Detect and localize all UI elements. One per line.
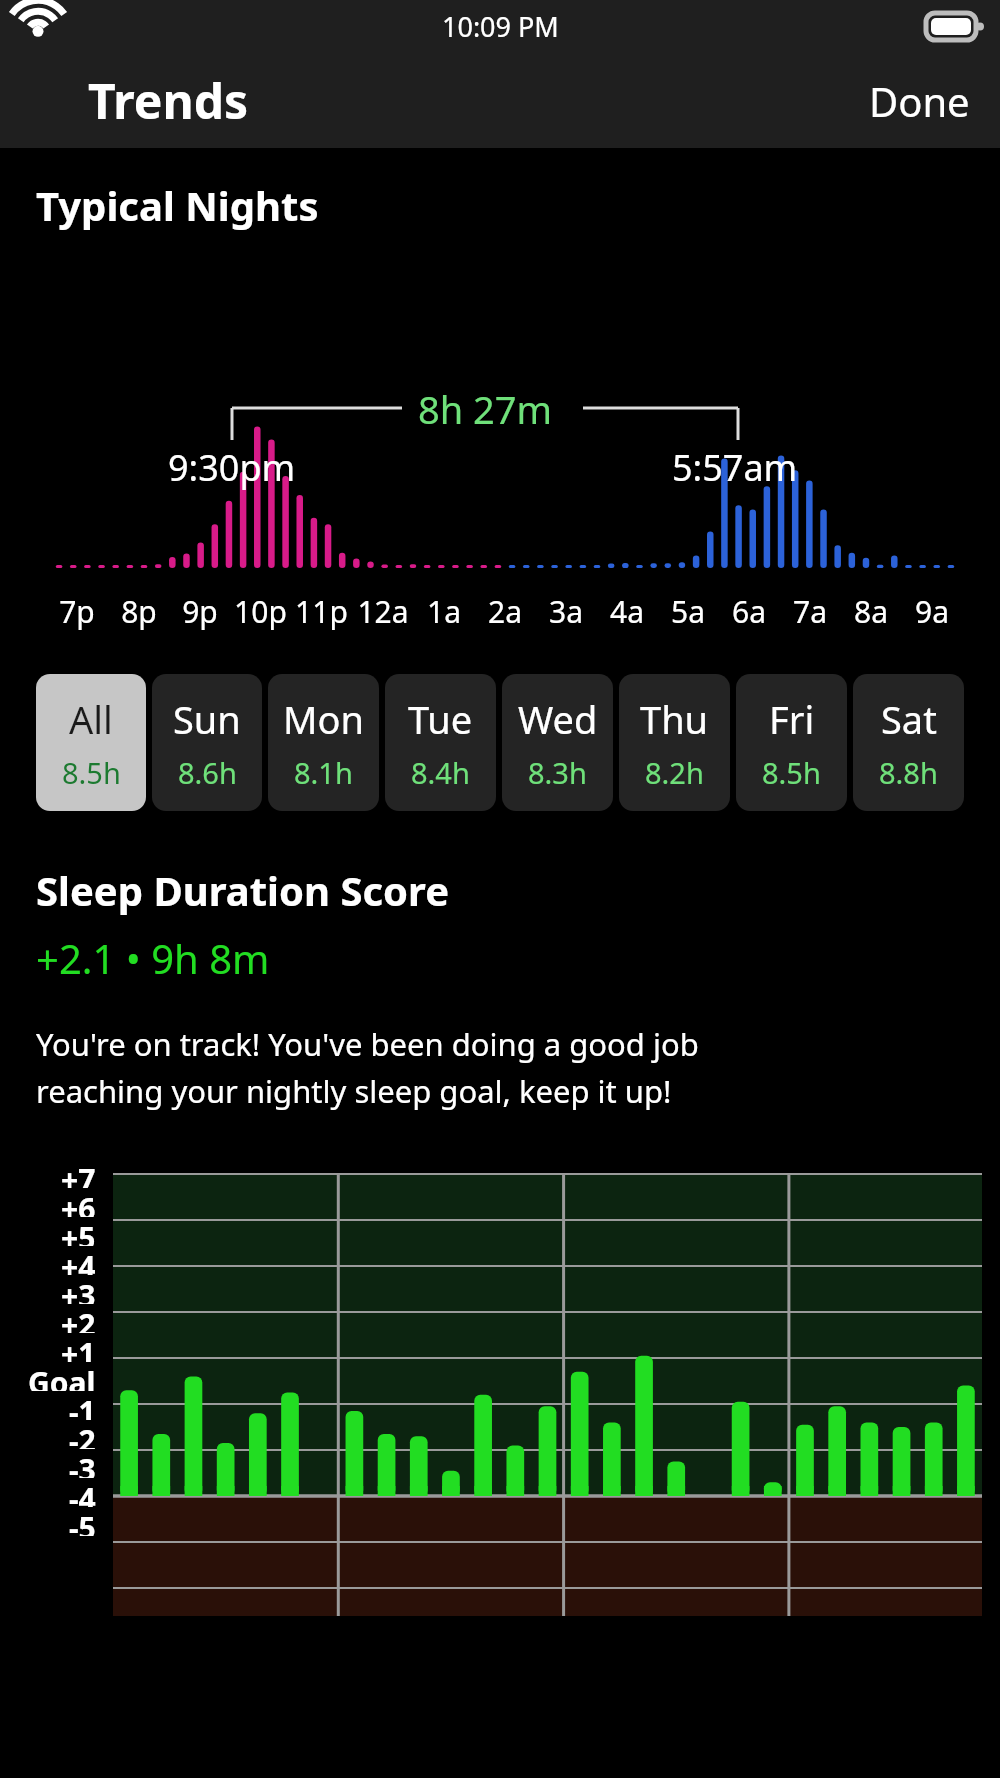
staticText: 8.5h — [62, 753, 121, 792]
staticText: 4a — [610, 591, 644, 632]
staticText: 7p — [59, 591, 95, 632]
staticText: -1 — [69, 1391, 96, 1420]
staticText: +6 — [61, 1188, 96, 1217]
staticText: 10:09 PM — [442, 8, 559, 45]
staticText: 1a — [427, 591, 461, 632]
button[interactable]: Sat — [853, 674, 964, 811]
staticText: 5a — [671, 591, 705, 632]
staticText: 5:57am — [672, 443, 798, 492]
staticText: Sleep Duration Score — [36, 863, 450, 917]
staticText: Mon — [283, 693, 364, 745]
staticText: +7 — [61, 1159, 96, 1188]
staticText: 12a — [357, 591, 409, 632]
staticText: Thu — [640, 693, 709, 745]
staticText: +3 — [61, 1275, 96, 1304]
staticText: Done — [869, 74, 970, 128]
staticText: -3 — [69, 1449, 96, 1478]
button[interactable]: Thu — [619, 674, 730, 811]
staticText: Typical Nights — [36, 178, 319, 232]
staticText: -4 — [69, 1478, 96, 1507]
staticText: 8.2h — [645, 753, 704, 792]
staticText: 8.4h — [411, 753, 470, 792]
button[interactable]: Done — [839, 64, 1000, 138]
staticText: +2 — [61, 1304, 96, 1333]
staticText: 8p — [121, 591, 157, 632]
staticText: Wed — [518, 693, 598, 745]
staticText: 9p — [182, 591, 218, 632]
staticText: 8.6h — [178, 753, 237, 792]
staticText: 8h 27m — [418, 383, 553, 435]
staticText: 8.3h — [528, 753, 587, 792]
staticText: 9:30pm — [168, 443, 296, 492]
staticText: -5 — [69, 1507, 96, 1536]
staticText: 10p — [234, 591, 287, 632]
staticText: +2.1 • 9h 8m — [36, 931, 270, 985]
staticText: Trends — [88, 68, 249, 133]
staticText: 6a — [732, 591, 766, 632]
staticText: 8.5h — [762, 753, 821, 792]
staticText: 8.1h — [294, 753, 353, 792]
other: Wi-Fi — [0, 5, 44, 49]
staticText: 9a — [915, 591, 949, 632]
button[interactable]: Fri — [736, 674, 847, 811]
staticText: Fri — [769, 693, 815, 745]
button[interactable]: Tue — [385, 674, 496, 811]
staticText: 2a — [488, 591, 522, 632]
staticText: Tue — [408, 693, 473, 745]
staticText: 11p — [295, 591, 348, 632]
staticText: You're on track! You've been doing a goo… — [36, 1023, 699, 1112]
staticText: Sun — [173, 693, 241, 745]
staticText: 8a — [854, 591, 888, 632]
button[interactable]: Wed — [502, 674, 613, 811]
staticText: All — [69, 693, 113, 745]
staticText: 3a — [549, 591, 583, 632]
staticText: +5 — [61, 1217, 96, 1246]
staticText: -2 — [69, 1420, 96, 1449]
button[interactable]: Mon — [268, 674, 379, 811]
staticText: 7a — [793, 591, 827, 632]
button[interactable]: Sun — [152, 674, 262, 811]
staticText: Sat — [881, 693, 937, 745]
other: Battery — [926, 13, 982, 40]
staticText: Goal — [28, 1362, 96, 1391]
staticText: 8.8h — [879, 753, 938, 792]
staticText: +1 — [61, 1333, 96, 1362]
staticText: +4 — [61, 1246, 96, 1275]
button[interactable]: All — [36, 674, 146, 811]
